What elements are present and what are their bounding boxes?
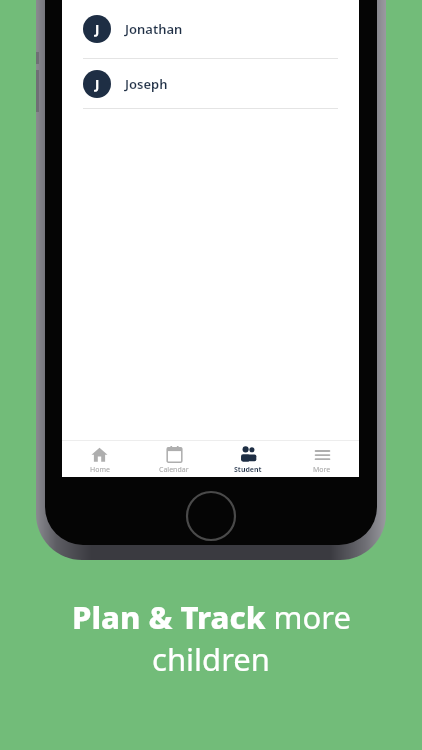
staticText: J [95,20,100,38]
staticText: Plan & Track more [72,596,351,638]
staticText: Home [90,465,110,475]
button[interactable]: Home [62,440,137,477]
button[interactable]: J [62,0,359,58]
button[interactable]: More [285,440,359,477]
staticText: children [152,638,270,680]
staticText: Student [234,465,262,475]
staticText: J [95,75,100,93]
button[interactable]: Calendar [137,440,211,477]
staticText: Jonathan [125,20,183,38]
staticText: More [313,465,331,475]
button[interactable]: J [62,59,359,108]
staticText: Joseph [125,75,168,93]
button[interactable]: Student [211,440,285,477]
staticText: Calendar [159,465,189,475]
